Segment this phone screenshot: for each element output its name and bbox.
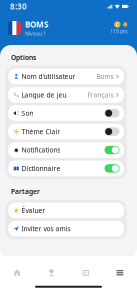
staticText: 8:30 bbox=[10, 1, 27, 12]
staticText: Son bbox=[21, 109, 33, 118]
staticText: Langue de jeu bbox=[21, 90, 66, 99]
button[interactable]: Notifications bbox=[8, 142, 124, 158]
staticText: Nom d'utilisateur bbox=[21, 72, 75, 81]
staticText: Inviter vos amis bbox=[21, 224, 70, 233]
staticText: Français bbox=[88, 90, 114, 99]
staticText: Évaluer bbox=[21, 206, 45, 215]
staticText: Notifications bbox=[21, 146, 60, 154]
button[interactable]: Home bbox=[0, 260, 34, 286]
button[interactable]: Nom d'utilisateur bbox=[8, 69, 124, 84]
staticText: Partager bbox=[11, 187, 40, 196]
staticText: Thème Clair bbox=[21, 127, 60, 136]
button[interactable]: Langue de jeu bbox=[8, 87, 124, 103]
button[interactable]: Son bbox=[8, 105, 124, 121]
button[interactable]: Thème Clair bbox=[8, 124, 124, 139]
staticText: Niveau 1 bbox=[25, 30, 46, 37]
button[interactable]: Dictionnaire bbox=[8, 161, 124, 176]
button[interactable]: Leaderboard bbox=[34, 260, 68, 286]
staticText: Boms bbox=[97, 72, 114, 81]
staticText: Options bbox=[11, 53, 36, 62]
staticText: 115 pts bbox=[110, 28, 128, 35]
staticText: C bbox=[116, 21, 119, 28]
button[interactable]: Inviter vos amis bbox=[8, 221, 124, 237]
button[interactable]: Évaluer bbox=[8, 202, 124, 218]
staticText: BOMS bbox=[25, 19, 48, 30]
button[interactable]: Games bbox=[68, 260, 103, 286]
button[interactable]: Menu bbox=[103, 260, 137, 286]
staticText: Dictionnaire bbox=[21, 164, 60, 173]
